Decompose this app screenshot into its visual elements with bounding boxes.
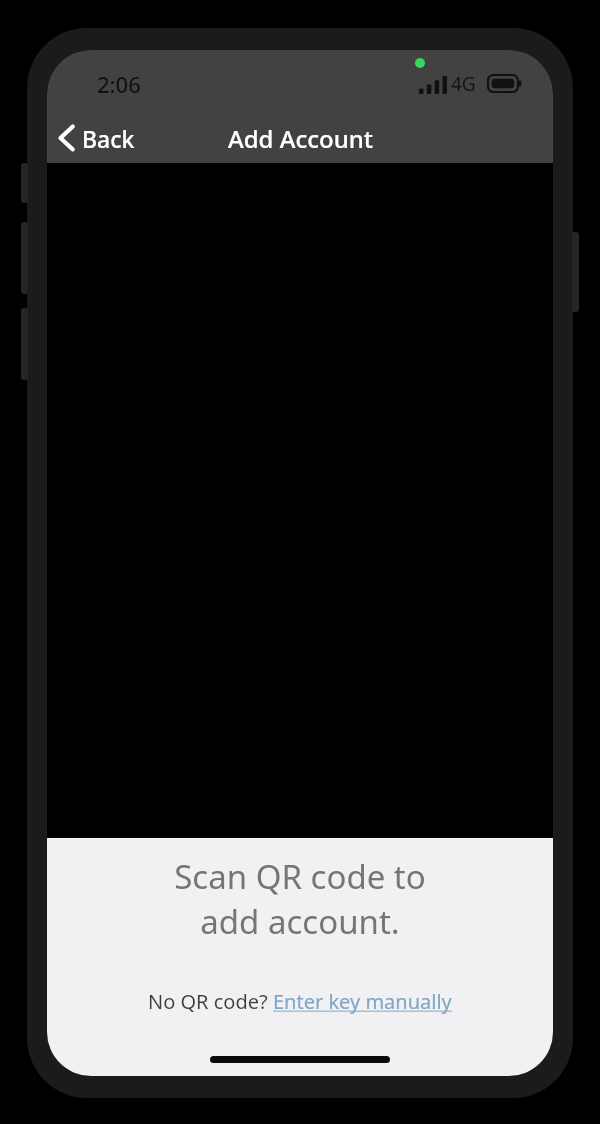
staticText: Add Account <box>228 122 373 155</box>
staticText: 4G <box>451 71 476 97</box>
staticText: No QR code? <box>148 988 273 1015</box>
button[interactable]: Back <box>47 113 149 163</box>
staticText: Scan QR code to add account. <box>174 854 426 943</box>
button[interactable]: Enter key manually <box>273 984 452 1019</box>
staticText: Back <box>82 123 135 154</box>
staticText: 2:06 <box>97 69 141 99</box>
staticText: Enter key manually <box>273 988 452 1015</box>
